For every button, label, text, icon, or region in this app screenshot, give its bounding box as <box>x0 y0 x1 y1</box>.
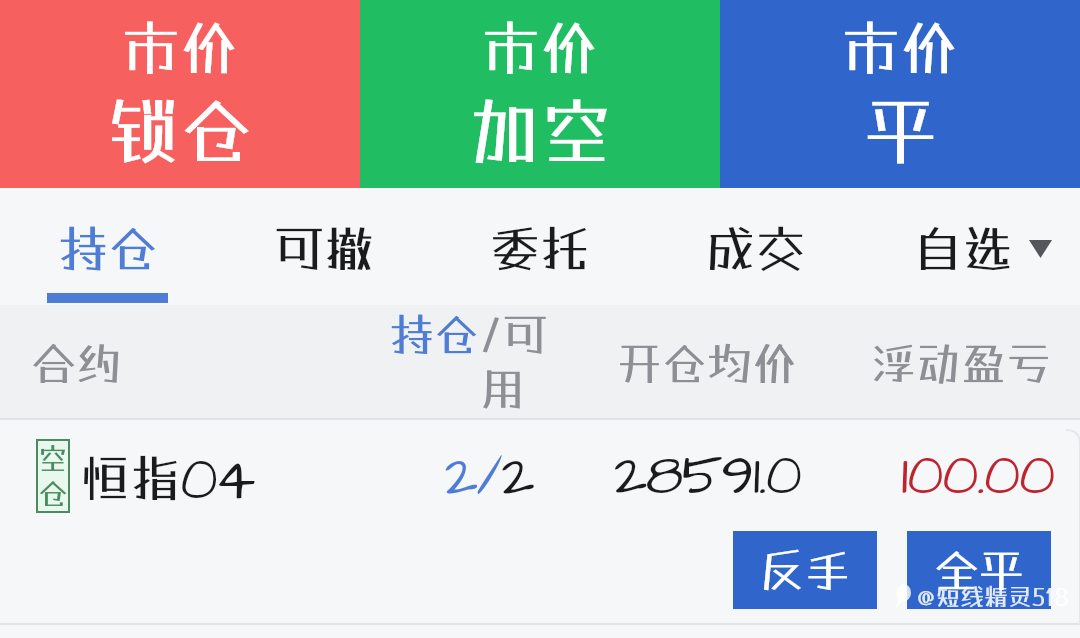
button[interactable]: 全平 <box>907 531 1051 609</box>
button[interactable]: 自选 <box>864 188 1080 305</box>
staticText: 锁仓 <box>107 87 253 173</box>
staticText: 持仓 <box>58 219 158 278</box>
staticText: 开仓均价 <box>617 337 798 390</box>
button[interactable]: 委托 <box>432 188 648 305</box>
staticText: 合约 <box>31 337 122 390</box>
staticText: 自选 <box>913 219 1013 278</box>
staticText: 反手 <box>760 544 851 597</box>
button[interactable]: 持仓 <box>0 188 216 305</box>
button[interactable]: 可撤 <box>216 188 432 305</box>
staticText: 浮动盈亏 <box>871 337 1052 390</box>
staticText: 成交 <box>706 219 806 278</box>
button[interactable]: 成交 <box>648 188 864 305</box>
button[interactable]: 市价 <box>0 0 360 188</box>
staticText: 恒指 <box>80 448 180 507</box>
staticText: @短线精灵518 <box>916 582 1069 610</box>
staticText: 市价 <box>482 13 599 81</box>
staticText: 市价 <box>842 13 959 81</box>
staticText: 空仓 <box>38 441 68 511</box>
button[interactable]: 反手 <box>733 531 877 609</box>
button[interactable]: 恒指04 持仓 <box>0 420 1080 522</box>
staticText: 委托 <box>490 219 590 278</box>
staticText: 平 <box>864 87 937 173</box>
staticText: 可撤 <box>274 219 374 278</box>
staticText: 全平 <box>934 544 1025 597</box>
staticText: 加空 <box>467 87 613 173</box>
staticText: 市价 <box>122 13 239 81</box>
staticText: 04 <box>180 439 253 522</box>
staticText: 100.00 <box>901 436 1054 517</box>
staticText: 持仓/可 <box>389 308 548 361</box>
staticText: 2/2 <box>409 437 569 518</box>
button[interactable]: 市价 <box>720 0 1080 188</box>
button[interactable]: 市价 <box>360 0 720 188</box>
staticText: 用 <box>479 363 525 416</box>
staticText: 28591.0 <box>614 436 801 517</box>
